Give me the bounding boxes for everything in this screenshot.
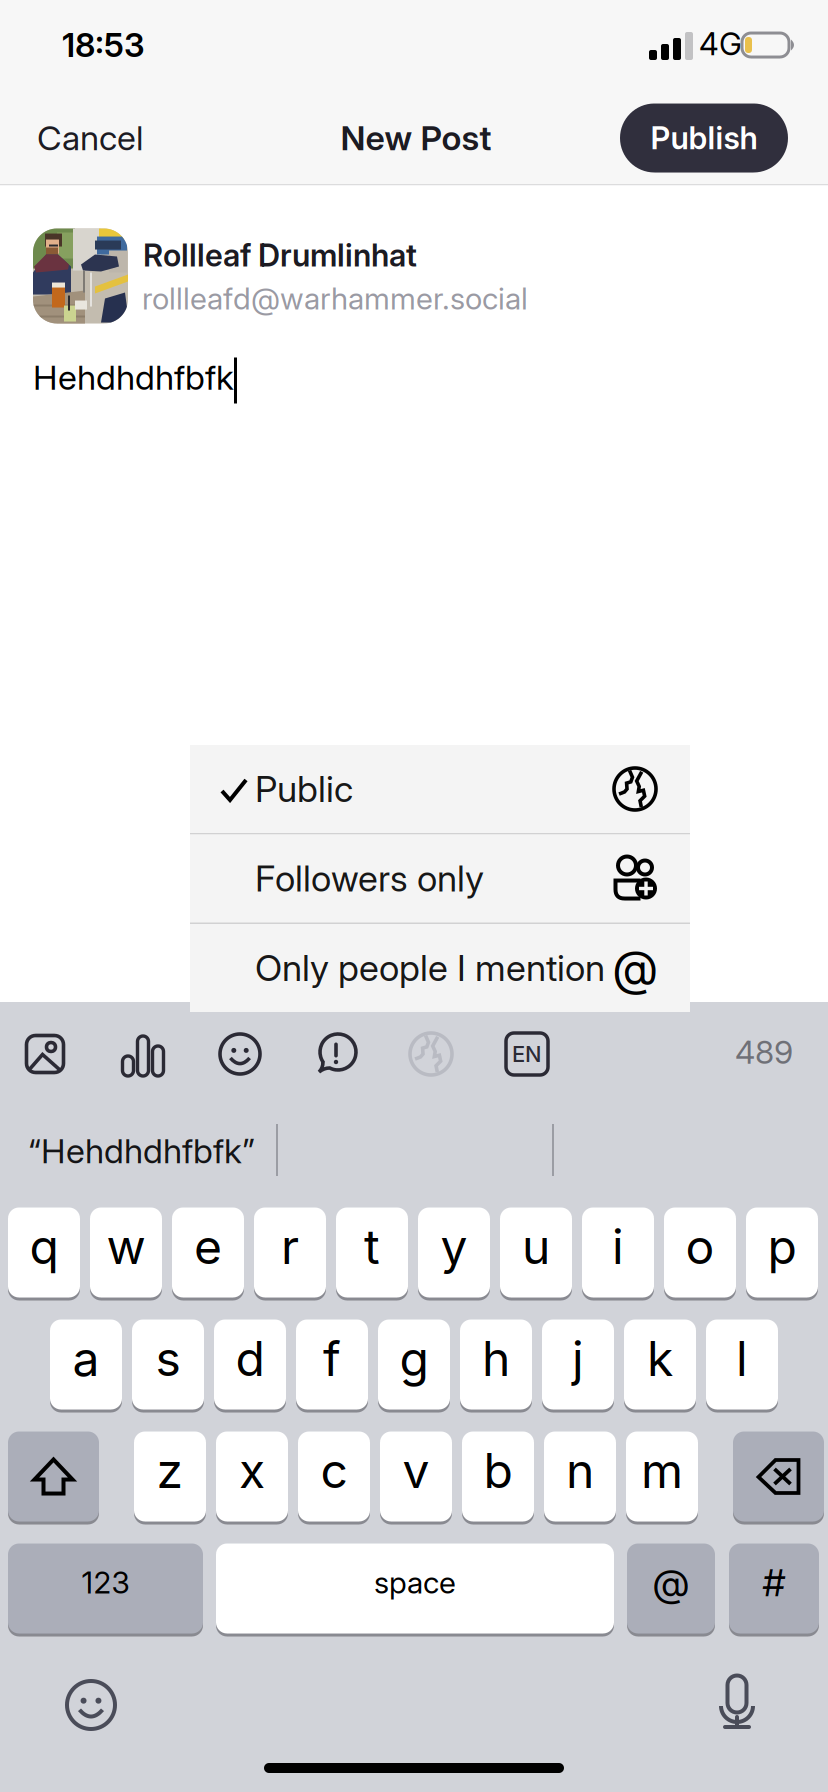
staticText: e: [194, 1217, 222, 1276]
staticText: k: [647, 1329, 673, 1388]
staticText: #: [762, 1559, 785, 1605]
button[interactable]: i: [582, 1206, 654, 1299]
button[interactable]: Shift: [8, 1430, 99, 1523]
staticText: Hehdhdhfbfk: [33, 357, 234, 398]
staticText: 18:53: [62, 25, 145, 65]
staticText: c: [320, 1441, 347, 1500]
staticText: t: [364, 1217, 380, 1276]
staticText: u: [522, 1217, 550, 1276]
button[interactable]: y: [418, 1206, 490, 1299]
staticText: a: [72, 1329, 99, 1388]
button[interactable]: v: [380, 1430, 452, 1523]
staticText: f: [323, 1329, 341, 1388]
staticText: Only people I mention: [255, 946, 605, 990]
button[interactable]: Public: [190, 745, 690, 833]
staticText: rollleafd@warhammer.social: [142, 280, 528, 317]
button[interactable]: #: [729, 1542, 819, 1635]
button[interactable]: z: [134, 1430, 206, 1523]
button[interactable]: b: [462, 1430, 534, 1523]
staticText: b: [483, 1441, 512, 1500]
staticText: g: [399, 1329, 428, 1388]
staticText: New Post: [340, 117, 491, 158]
button[interactable]: l: [706, 1318, 778, 1411]
staticText: EN: [512, 1041, 542, 1067]
staticText: y: [440, 1217, 467, 1276]
button[interactable]: @: [627, 1542, 715, 1635]
staticText: “Hehdhdhfbfk”: [28, 1130, 255, 1171]
button[interactable]: Publish: [620, 103, 788, 172]
button[interactable]: space: [216, 1542, 614, 1635]
staticText: z: [156, 1441, 183, 1500]
button[interactable]: Add image: [6, 1017, 84, 1091]
staticText: Public: [255, 767, 353, 811]
button[interactable]: Followers only: [190, 834, 690, 922]
button[interactable]: q: [8, 1206, 80, 1299]
button[interactable]: x: [216, 1430, 288, 1523]
button[interactable]: a: [50, 1318, 122, 1411]
staticText: q: [29, 1217, 58, 1276]
staticText: p: [767, 1217, 796, 1276]
staticText: Cancel: [37, 117, 143, 158]
button[interactable]: f: [296, 1318, 368, 1411]
staticText: l: [736, 1329, 748, 1388]
button[interactable]: c: [298, 1430, 370, 1523]
button[interactable]: Dictation: [691, 1663, 783, 1743]
button[interactable]: Language: [488, 1017, 566, 1091]
staticText: 489: [735, 1033, 793, 1071]
button[interactable]: Visibility: [392, 1017, 470, 1091]
staticText: Followers only: [255, 857, 484, 900]
staticText: n: [566, 1441, 594, 1500]
button[interactable]: t: [336, 1206, 408, 1299]
staticText: w: [106, 1217, 145, 1276]
staticText: r: [281, 1217, 299, 1276]
button[interactable]: j: [542, 1318, 614, 1411]
staticText: v: [402, 1441, 429, 1500]
staticText: i: [612, 1217, 624, 1276]
staticText: s: [155, 1329, 180, 1388]
staticText: m: [641, 1441, 683, 1500]
button[interactable]: Content warning: [297, 1017, 375, 1091]
button[interactable]: Cancel: [0, 92, 180, 184]
button[interactable]: d: [214, 1318, 286, 1411]
button[interactable]: e: [172, 1206, 244, 1299]
button[interactable]: k: [624, 1318, 696, 1411]
button[interactable]: Delete: [733, 1430, 824, 1523]
button[interactable]: o: [664, 1206, 736, 1299]
button[interactable]: p: [746, 1206, 818, 1299]
staticText: @: [652, 1559, 689, 1605]
staticText: o: [685, 1217, 714, 1276]
staticText: @: [612, 939, 658, 997]
staticText: 4G: [699, 25, 742, 63]
staticText: Rollleaf Drumlinhat: [143, 236, 417, 274]
button[interactable]: m: [626, 1430, 698, 1523]
button[interactable]: r: [254, 1206, 326, 1299]
staticText: j: [572, 1329, 584, 1388]
staticText: Publish: [650, 119, 757, 157]
button[interactable]: w: [90, 1206, 162, 1299]
staticText: x: [239, 1441, 265, 1500]
button[interactable]: s: [132, 1318, 204, 1411]
staticText: space: [374, 1564, 456, 1601]
button[interactable]: g: [378, 1318, 450, 1411]
staticText: d: [235, 1329, 264, 1388]
button[interactable]: Only people I mention: [190, 924, 690, 1012]
button[interactable]: n: [544, 1430, 616, 1523]
button[interactable]: Add poll: [104, 1017, 182, 1091]
button[interactable]: Emoji keyboard: [45, 1665, 137, 1745]
button[interactable]: 123: [8, 1542, 203, 1635]
button[interactable]: u: [500, 1206, 572, 1299]
button[interactable]: h: [460, 1318, 532, 1411]
staticText: h: [482, 1329, 510, 1388]
button[interactable]: Emoji: [201, 1017, 279, 1091]
staticText: 123: [81, 1564, 129, 1601]
